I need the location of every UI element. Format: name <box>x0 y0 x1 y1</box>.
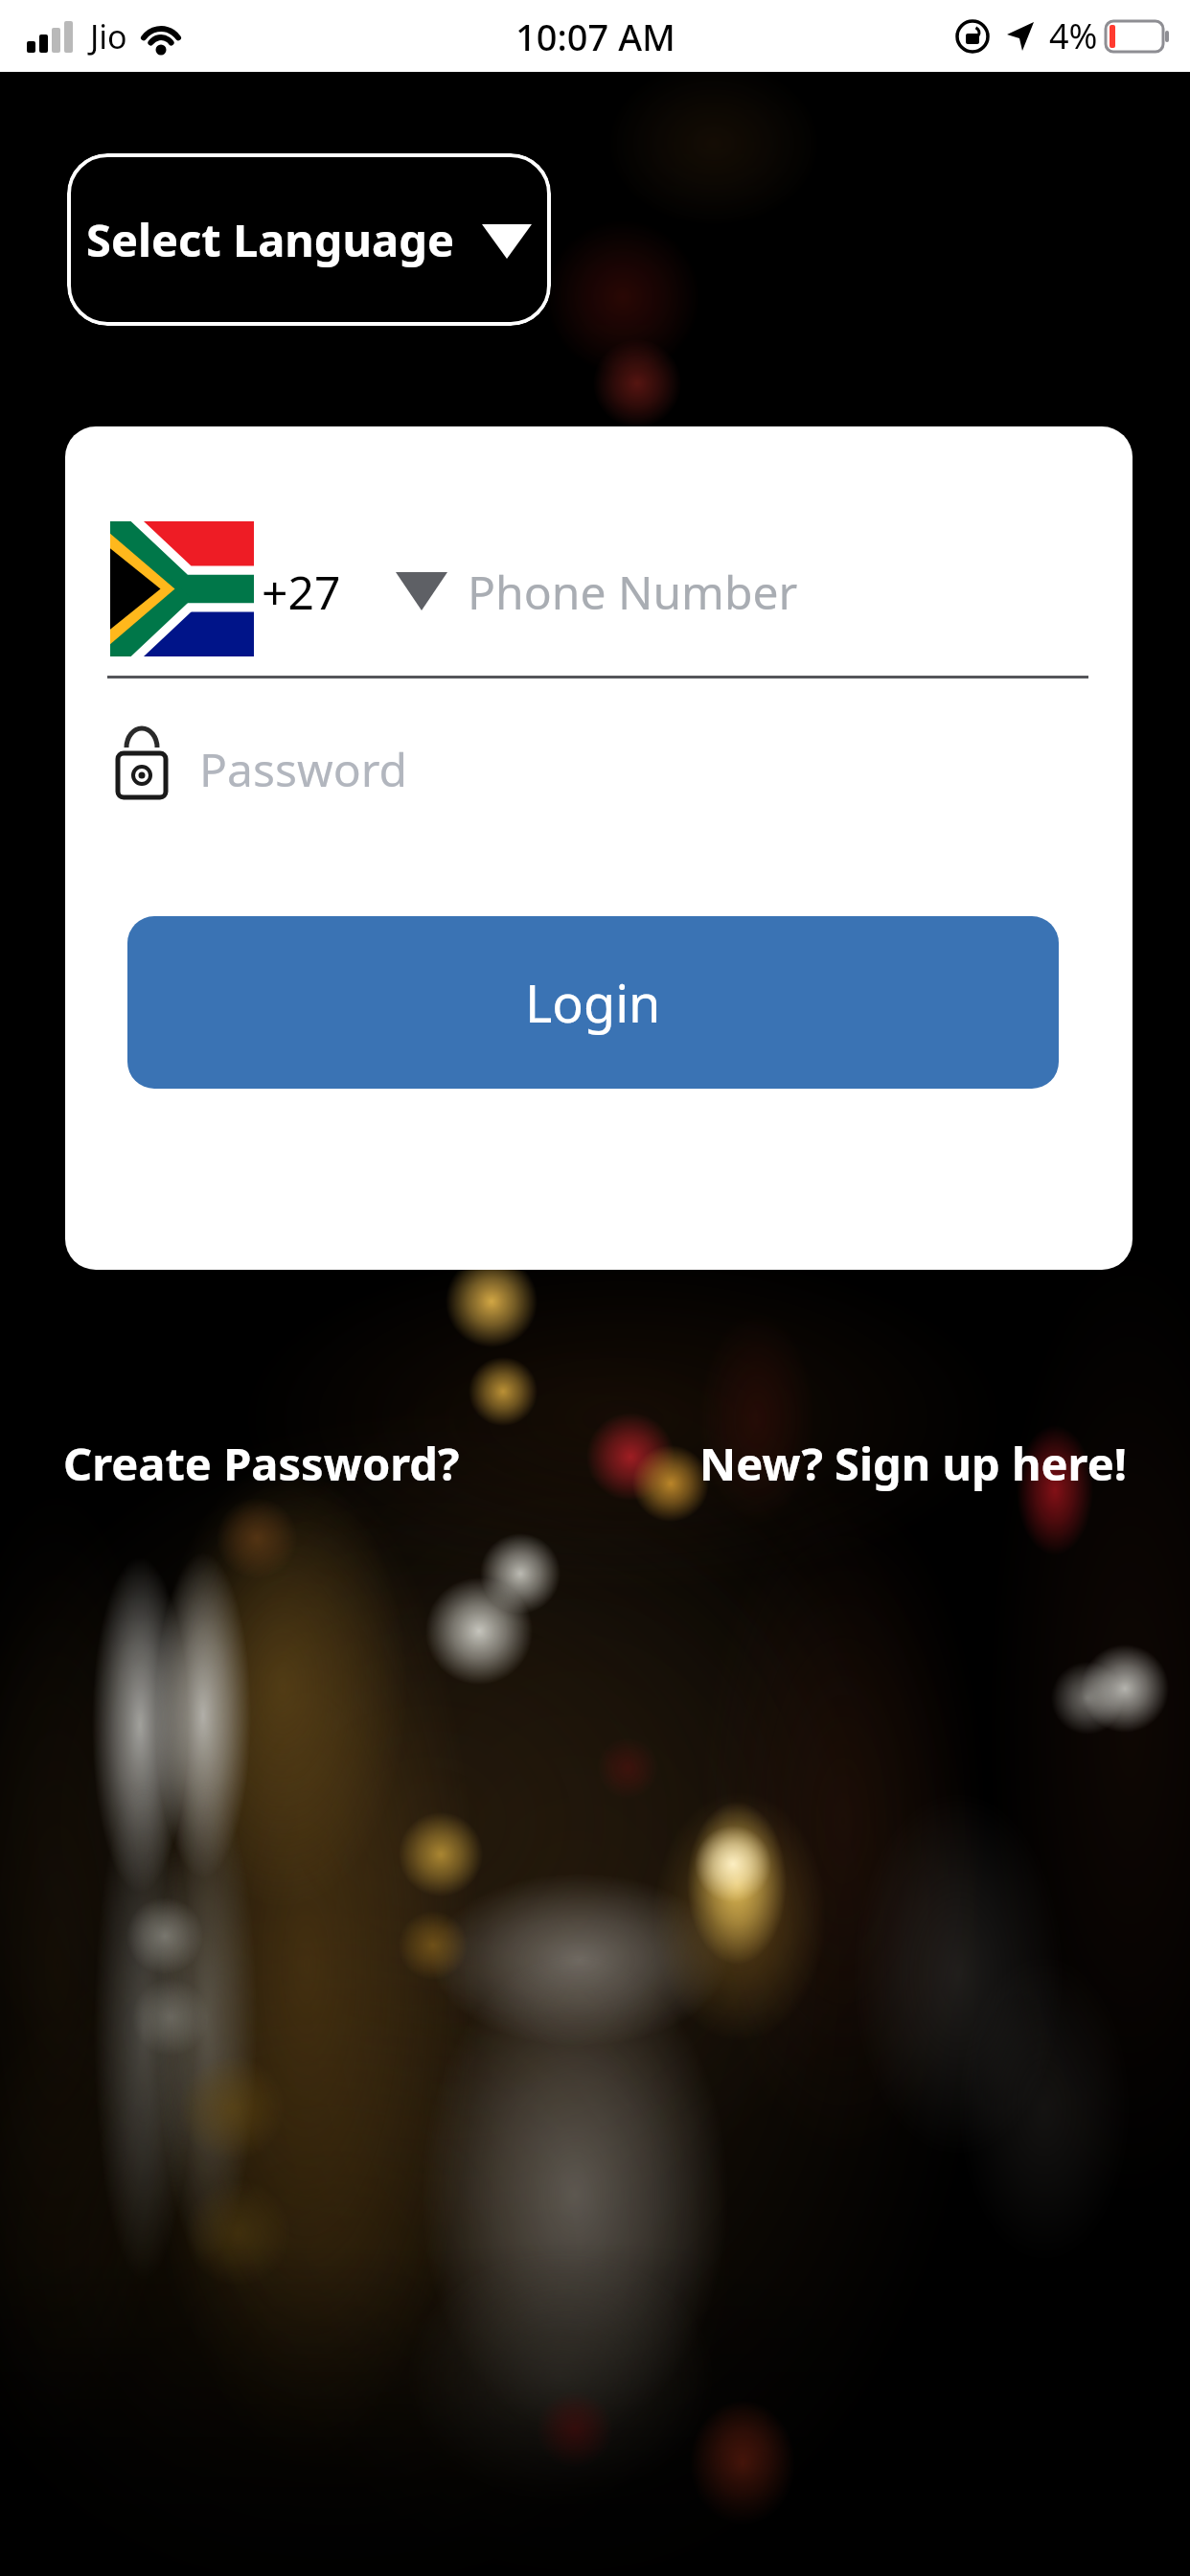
staticText: Jio <box>90 14 127 58</box>
button[interactable]: Password <box>107 714 1088 810</box>
button[interactable]: Phone Number <box>458 521 1088 660</box>
staticText: Select Language <box>86 209 455 270</box>
button[interactable]: Select Language <box>67 153 551 326</box>
staticText: Phone Number <box>468 561 798 623</box>
staticText: 10:07 AM <box>515 11 675 61</box>
staticText: Login <box>525 967 661 1038</box>
button[interactable]: New? Sign up here! <box>671 1433 1127 1494</box>
button[interactable]: Login <box>127 916 1059 1089</box>
button[interactable]: +27 <box>107 518 452 660</box>
staticText: Password <box>199 738 408 800</box>
button[interactable]: Create Password? <box>63 1433 460 1494</box>
staticText: 4% <box>1049 12 1098 59</box>
staticText: +27 <box>262 561 341 623</box>
